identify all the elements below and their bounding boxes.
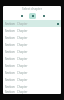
staticText: Section <box>5 71 15 75</box>
button[interactable]: Section <box>3 55 61 62</box>
staticText: Section <box>5 85 15 89</box>
staticText: Chapter <box>17 29 28 33</box>
staticText: Select chapter <box>22 7 42 11</box>
staticText: Section <box>5 50 15 54</box>
staticText: Section <box>5 90 15 94</box>
staticText: Section <box>5 36 15 40</box>
button[interactable]: Section <box>3 83 61 90</box>
button[interactable]: Section <box>3 69 61 76</box>
button[interactable]: Section <box>3 34 61 41</box>
button[interactable]: Current <box>29 13 36 19</box>
staticText: Section <box>5 78 15 82</box>
staticText: Chapter <box>17 22 28 26</box>
staticText: Chapter <box>17 43 28 47</box>
button[interactable]: Section <box>3 41 61 48</box>
button[interactable]: Section <box>3 76 61 83</box>
button[interactable]: Section <box>3 48 61 55</box>
staticText: Chapter <box>17 36 28 40</box>
staticText: Chapter <box>17 90 28 94</box>
staticText: Section <box>5 43 15 47</box>
staticText: Chapter <box>17 57 28 61</box>
button[interactable]: Section <box>3 27 61 34</box>
staticText: Chapter <box>17 64 28 68</box>
staticText: Section <box>5 64 15 68</box>
staticText: Section <box>5 22 15 26</box>
staticText: Section <box>5 57 15 61</box>
staticText: Chapter <box>17 78 28 82</box>
staticText: Chapter <box>17 50 28 54</box>
button[interactable]: Previous <box>18 13 25 19</box>
button[interactable]: Section <box>3 62 61 69</box>
button[interactable]: Next <box>40 13 47 19</box>
staticText: Chapter <box>17 71 28 75</box>
staticText: Section <box>5 29 15 33</box>
button[interactable]: Section <box>3 90 61 94</box>
staticText: Chapter <box>17 85 28 89</box>
button[interactable]: Section <box>3 20 61 27</box>
